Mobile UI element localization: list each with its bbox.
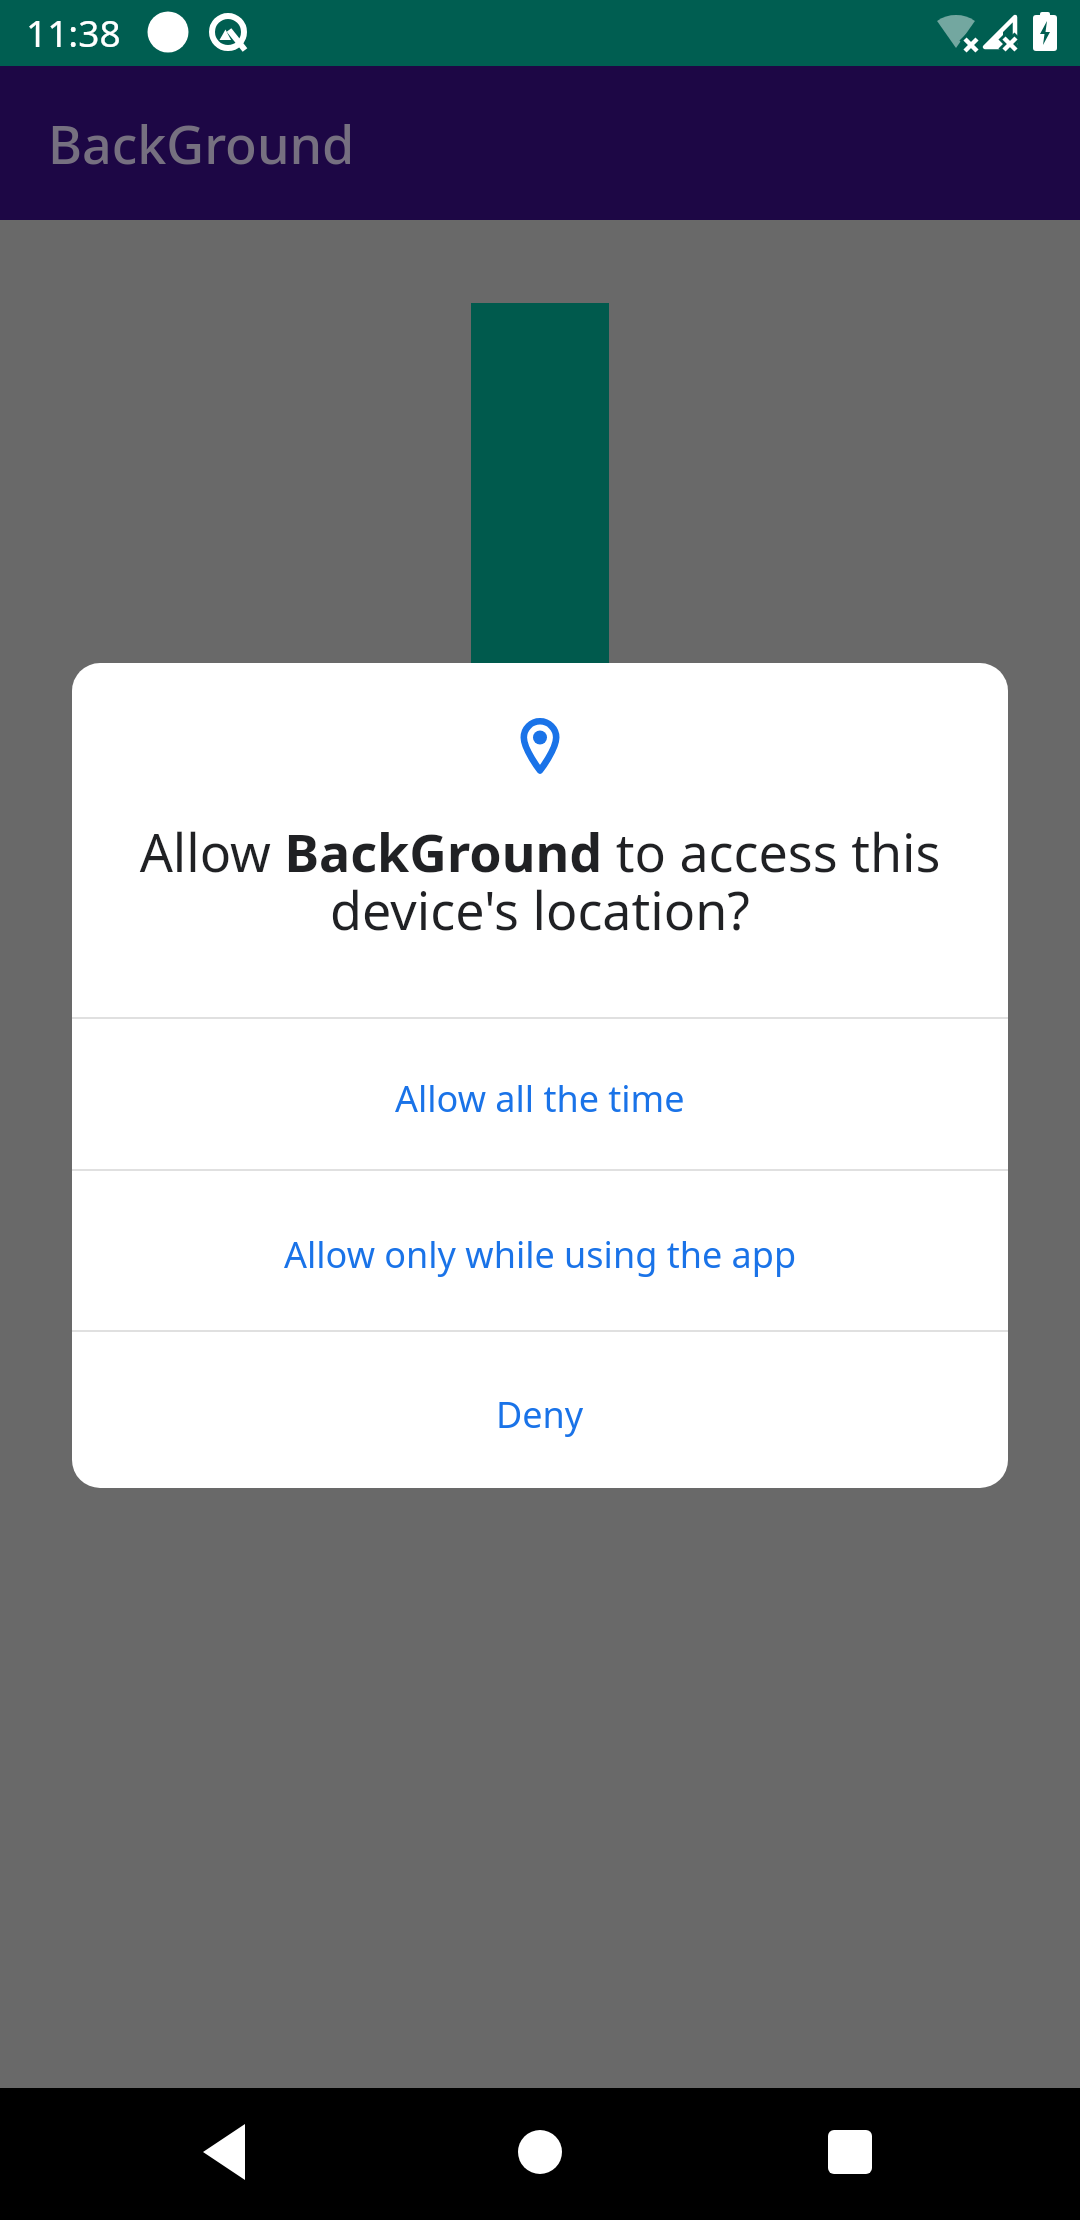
staticText: Allow all the time bbox=[395, 1074, 685, 1123]
button[interactable] bbox=[498, 2110, 582, 2194]
button[interactable]: Deny bbox=[72, 1332, 1008, 1488]
button[interactable]: Allow all the time bbox=[72, 1019, 1008, 1169]
staticText: Allow BackGround to access this device's… bbox=[132, 816, 948, 945]
staticText: BackGround bbox=[48, 108, 355, 179]
button[interactable]: Allow only while using the app bbox=[72, 1171, 1008, 1330]
staticText: 11:38 bbox=[26, 7, 121, 57]
button[interactable] bbox=[190, 2110, 274, 2194]
button[interactable] bbox=[808, 2110, 892, 2194]
staticText: Deny bbox=[496, 1390, 584, 1439]
staticText: Allow only while using the app bbox=[284, 1230, 797, 1279]
